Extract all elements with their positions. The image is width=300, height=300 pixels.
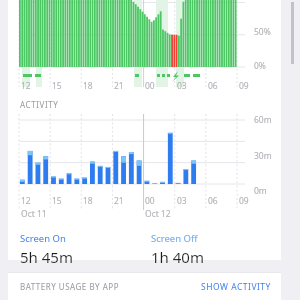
button[interactable]: Screen On (20, 232, 73, 267)
staticText: SHOW ACTIVITY (201, 281, 271, 293)
staticText: 06 (208, 80, 218, 92)
staticText: 1h 40m (151, 247, 204, 267)
staticText: Oct 12 (145, 208, 171, 220)
staticText: Screen On (20, 232, 66, 245)
staticText: 0m (254, 185, 267, 197)
staticText: BATTERY USAGE BY APP (20, 281, 119, 292)
staticText: 12 (21, 195, 31, 207)
staticText: 15 (52, 195, 62, 207)
staticText: 00 (145, 195, 155, 207)
staticText: 03 (177, 195, 187, 207)
staticText: 21 (114, 80, 124, 92)
button[interactable]: SHOW ACTIVITY (197, 281, 281, 293)
button[interactable]: Screen Off (151, 232, 204, 267)
staticText: 06 (208, 195, 218, 207)
staticText: 03 (177, 80, 187, 92)
staticText: 21 (114, 195, 124, 207)
staticText: 09 (239, 80, 249, 92)
staticText: 15 (52, 80, 62, 92)
staticText: 12 (21, 80, 31, 92)
staticText: Oct 11 (21, 208, 47, 220)
staticText: 50% (254, 26, 271, 38)
staticText: 0% (254, 60, 266, 72)
staticText: 60m (254, 114, 272, 126)
staticText: 09 (239, 195, 249, 207)
staticText: 5h 45m (20, 247, 73, 267)
staticText: 00 (145, 80, 155, 92)
staticText: Screen Off (151, 232, 198, 245)
staticText: 18 (83, 195, 93, 207)
staticText: 30m (254, 150, 272, 162)
staticText: 18 (83, 80, 93, 92)
button[interactable]: BATTERY USAGE BY APP (8, 281, 123, 292)
staticText: ACTIVITY (20, 99, 59, 110)
